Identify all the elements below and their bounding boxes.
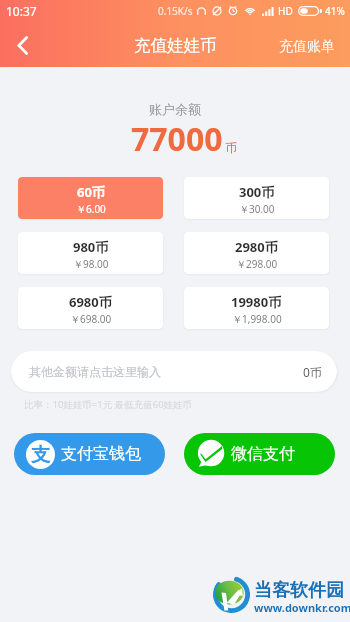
staticText: www.downkr.com [254,600,350,615]
button[interactable]: 980币 [18,232,163,274]
button[interactable]: 300币 [184,177,329,219]
staticText: ￥6.00 [76,202,106,216]
staticText: 300币 [239,183,275,201]
staticText: 6980币 [69,293,112,311]
staticText: 0币 [303,364,322,380]
staticText: 10:37 [6,3,37,19]
button[interactable]: 充值账单 [265,25,350,65]
staticText: ￥98.00 [73,257,109,271]
staticText: 支付宝钱包 [61,444,141,464]
staticText: 2980币 [235,238,278,256]
staticText: 微信支付 [231,444,295,464]
staticText: 77000 [131,117,223,161]
staticText: 币 [225,140,237,155]
staticText: 当客软件园 [254,579,344,602]
button[interactable]: 60币 [18,177,163,219]
staticText: 充值娃娃币 [134,35,217,56]
button[interactable]: 6980币 [18,287,163,329]
staticText: 41% [325,4,345,18]
staticText: 账户余额 [149,101,201,117]
staticText: ￥30.00 [239,202,275,216]
staticText: 60币 [77,183,105,201]
staticText: HD [278,4,293,18]
staticText: 支 [31,443,50,467]
staticText: 比率：10娃娃币=1元 最低充值60娃娃币 [24,398,193,411]
button[interactable]: 2980币 [184,232,329,274]
staticText: 980币 [73,238,109,256]
button[interactable]: 其他金额请点击这里输入 [11,351,337,392]
button[interactable]: 微信支付 [184,433,335,475]
staticText: ￥698.00 [70,312,112,326]
staticText: 0.15K/s [158,4,193,18]
button[interactable]: 支 [14,433,165,475]
staticText: 19980币 [231,293,282,311]
button[interactable]: Back [0,23,44,67]
button[interactable]: 19980币 [184,287,329,329]
staticText: ￥1,998.00 [232,312,282,326]
staticText: 充值账单 [279,38,335,56]
staticText: ￥298.00 [236,257,278,271]
staticText: 其他金额请点击这里输入 [29,364,161,379]
